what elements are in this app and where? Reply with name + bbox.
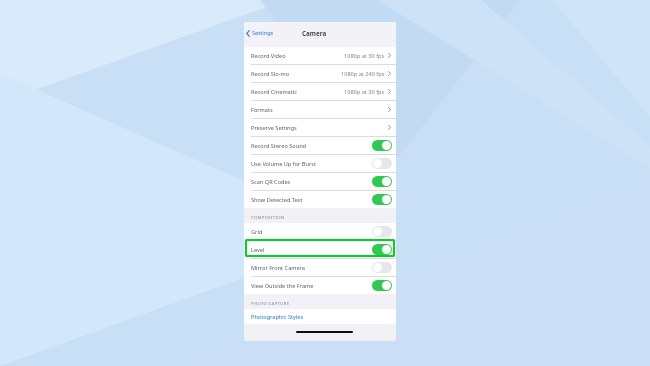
button[interactable]: Formats xyxy=(244,101,396,119)
staticText: Photographic Styles xyxy=(251,313,304,321)
staticText: Use Volume Up for Burst xyxy=(251,160,316,168)
button[interactable]: Level xyxy=(244,241,396,259)
staticText: Grid xyxy=(251,228,263,236)
staticText: Show Detected Text xyxy=(251,196,303,204)
staticText: 1080p at 240 fps xyxy=(341,70,385,78)
staticText: 1080p at 30 fps xyxy=(344,52,385,60)
staticText: Level xyxy=(251,246,265,254)
staticText: Formats xyxy=(251,106,273,114)
button[interactable]: Back to Settings xyxy=(246,29,274,37)
staticText: Mirror Front Camera xyxy=(251,264,305,272)
button[interactable]: Record Video xyxy=(244,47,396,65)
staticText: Scan QR Codes xyxy=(251,178,291,186)
button[interactable]: View Outside the Frame xyxy=(244,277,396,294)
button[interactable]: Mirror Front Camera xyxy=(244,259,396,277)
button[interactable]: Record Stereo Sound xyxy=(244,137,396,155)
button[interactable]: Show Detected Text xyxy=(244,191,396,208)
button[interactable]: Record Slo-mo xyxy=(244,65,396,83)
staticText: Record Video xyxy=(251,52,286,60)
staticText: Settings xyxy=(252,29,274,37)
staticText: PHOTO CAPTURE xyxy=(251,300,290,306)
staticText: Record Stereo Sound xyxy=(251,142,307,150)
staticText: Preserve Settings xyxy=(251,124,297,132)
button[interactable]: Scan QR Codes xyxy=(244,173,396,191)
staticText: COMPOSITION xyxy=(251,214,285,220)
staticText: 1080p at 30 fps xyxy=(344,88,385,96)
button[interactable]: Record Cinematic xyxy=(244,83,396,101)
button[interactable]: Use Volume Up for Burst xyxy=(244,155,396,173)
button[interactable]: Preserve Settings xyxy=(244,119,396,137)
staticText: Camera xyxy=(302,29,327,38)
staticText: Record Slo-mo xyxy=(251,70,290,78)
staticText: Record Cinematic xyxy=(251,88,297,96)
button[interactable]: Photographic Styles xyxy=(244,309,396,324)
other: Back to Settings xyxy=(246,30,250,37)
staticText: View Outside the Frame xyxy=(251,282,314,290)
button[interactable]: Grid xyxy=(244,223,396,241)
